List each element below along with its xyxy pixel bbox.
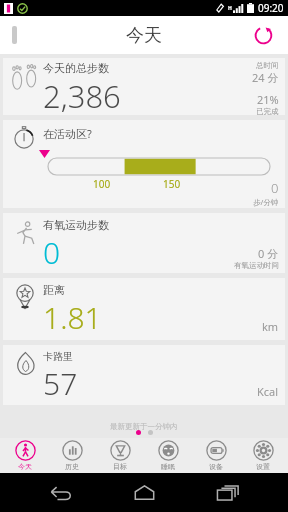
staticText: 有氧运动步数 [43,218,109,232]
staticText: H [228,5,232,12]
button[interactable]: 目标 [97,438,143,473]
staticText: 57 [43,363,78,404]
staticText: 今天 [18,462,32,471]
staticText: 设置 [256,462,270,471]
staticText: 步/分钟 [253,197,279,207]
button[interactable]: Back [38,473,84,512]
staticText: 2,386 [43,75,121,115]
staticText: 距离 [43,283,65,297]
staticText: 100 [93,177,111,191]
staticText: 卡路里 [43,350,73,363]
button[interactable]: 睡眠 [145,438,191,473]
staticText: 最新更新于一分钟内 [110,422,178,431]
staticText: 0 [271,179,279,197]
button[interactable]: 设备 [193,438,239,473]
button[interactable]: 历史 [49,438,95,473]
button[interactable]: 卡路里 [3,345,285,405]
button[interactable]: 刷新 [246,18,280,52]
staticText: 历史 [65,462,79,471]
button[interactable]: Recents [205,473,251,512]
staticText: 今天的总步数 [43,61,109,75]
button[interactable]: 距离 [3,278,285,340]
staticText: 在活动区? [43,126,92,141]
staticText: 目标 [113,462,127,471]
staticText: 已完成 [256,107,279,115]
staticText: 睡眠 [161,462,175,471]
staticText: 今天 [126,24,162,47]
staticText: 0 [43,232,61,273]
button[interactable]: Home [121,473,167,512]
button[interactable]: 有氧运动步数 [3,213,285,273]
staticText: Kcal [257,384,279,399]
button[interactable]: 今天 [2,438,48,473]
staticText: km [262,319,279,334]
staticText: 有氧运动时间 [234,261,279,270]
button[interactable]: 设置 [240,438,286,473]
staticText: 设备 [209,462,223,471]
staticText: 24 分 [252,70,279,85]
staticText: 1.81 [43,297,102,338]
button[interactable]: 在活动区? [3,120,285,208]
staticText: 09:20 [258,1,284,15]
staticText: 150 [163,177,181,191]
staticText: 21% [257,92,279,107]
button[interactable]: 今天的总步数 [3,58,285,115]
staticText: 0 分 [258,246,279,261]
staticText: 总时间 [256,61,279,70]
